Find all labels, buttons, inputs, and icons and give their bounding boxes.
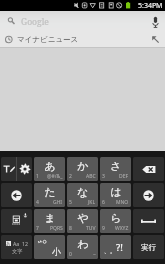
staticText: 0: [69, 251, 72, 258]
button[interactable]: Google: [0, 11, 145, 32]
staticText: さ: [110, 159, 122, 173]
button[interactable]: Delete: [133, 157, 164, 181]
staticText: は: [110, 185, 122, 199]
button[interactable]: あ: [34, 157, 65, 181]
staticText: PQRS: [50, 225, 63, 232]
button[interactable]: わ: [67, 235, 98, 259]
staticText: ま: [44, 211, 56, 225]
staticText: Aa: [13, 240, 20, 247]
button[interactable]: や: [67, 209, 98, 233]
staticText: 文字: [12, 248, 23, 255]
button[interactable]: か: [67, 157, 98, 181]
button[interactable]: Next character: [133, 183, 164, 207]
staticText: 4: [36, 199, 39, 206]
button[interactable]: さ: [100, 157, 131, 181]
button[interactable]: な: [67, 183, 98, 207]
button[interactable]: た: [34, 183, 65, 207]
staticText: GHI: [53, 199, 63, 206]
staticText: 、。: [104, 247, 116, 255]
button[interactable]: Space: [133, 209, 164, 233]
button[interactable]: Change input mode: [1, 235, 32, 259]
staticText: ら: [110, 211, 122, 225]
staticText: 8: [69, 225, 72, 232]
button[interactable]: Edit text: [1, 157, 32, 181]
staticText: ~: [93, 251, 96, 258]
staticText: 5:34PM: [138, 1, 163, 11]
staticText: 2: [69, 173, 72, 180]
staticText: 3: [102, 173, 105, 180]
staticText: 1: [36, 173, 39, 180]
staticText: あ: [44, 159, 56, 173]
staticText: 9: [102, 225, 105, 232]
staticText: ABC: [86, 173, 96, 180]
staticText: ?!: [116, 241, 123, 254]
button[interactable]: Dakuten and small kana: [34, 235, 65, 259]
staticText: か: [77, 159, 89, 173]
staticText: わ: [77, 237, 89, 251]
button[interactable]: Settings: [17, 157, 32, 181]
button[interactable]: Previous character: [1, 183, 32, 207]
staticText: WXYZ: [115, 225, 129, 232]
button[interactable]: Punctuation: [100, 235, 131, 259]
staticText: @#/&_: [47, 173, 63, 180]
staticText: JKL: [88, 199, 96, 206]
button[interactable]: は: [100, 183, 131, 207]
button[interactable]: Use this suggestion: [145, 32, 165, 47]
button[interactable]: Edit text: [1, 157, 16, 181]
staticText: DEF: [119, 173, 129, 180]
staticText: あ: [6, 241, 11, 246]
staticText: 実行: [141, 243, 156, 252]
staticText: Google: [21, 16, 49, 28]
staticText: な: [77, 185, 89, 199]
button[interactable]: 実行: [133, 235, 164, 259]
button[interactable]: ま: [34, 209, 65, 233]
button[interactable]: Symbols and voice input: [1, 209, 32, 233]
staticText: TUV: [86, 225, 96, 232]
staticText: 小: [52, 246, 61, 257]
button[interactable]: ら: [100, 209, 131, 233]
staticText: 12: [22, 240, 28, 247]
staticText: や: [77, 211, 89, 225]
staticText: 5: [69, 199, 72, 206]
staticText: た: [44, 185, 56, 199]
staticText: 7: [36, 225, 39, 232]
button[interactable]: マイナビニュース: [0, 32, 165, 47]
staticText: マイナビニュース: [17, 35, 79, 44]
staticText: 6: [102, 199, 105, 206]
staticText: MNO: [116, 199, 129, 206]
button[interactable]: Voice search: [145, 11, 165, 32]
